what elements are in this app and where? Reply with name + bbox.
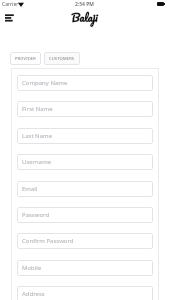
staticText: Last Name: [22, 132, 53, 140]
staticText: Company Name: [22, 79, 68, 87]
button[interactable]: Last Name: [17, 128, 153, 144]
staticText: Username: [22, 158, 52, 166]
button[interactable]: Email: [17, 181, 153, 197]
staticText: 2:54 PM: [75, 1, 94, 8]
button[interactable]: Password: [17, 207, 153, 223]
staticText: Confirm Password: [22, 237, 74, 245]
button[interactable]: Company Name: [17, 75, 153, 91]
staticText: Address: [22, 290, 45, 298]
staticText: Email: [22, 185, 38, 193]
button[interactable]: Mobile: [17, 260, 153, 276]
button[interactable]: Username: [17, 154, 153, 170]
staticText: Balaji: [71, 8, 98, 26]
staticText: CUSTOMERS: [49, 56, 75, 61]
button[interactable]: First Name: [17, 101, 153, 117]
button[interactable]: Address: [17, 286, 153, 300]
staticText: Password: [22, 211, 50, 219]
staticText: Mobile: [22, 264, 42, 272]
button[interactable]: Confirm Password: [17, 233, 153, 249]
staticText: PROVIDER: [15, 56, 36, 61]
button[interactable]: CUSTOMERS: [44, 52, 80, 65]
staticText: Carrier: [2, 1, 19, 8]
button[interactable]: Menu: [0, 8, 19, 27]
staticText: First Name: [22, 105, 53, 113]
button[interactable]: PROVIDER: [10, 52, 41, 65]
